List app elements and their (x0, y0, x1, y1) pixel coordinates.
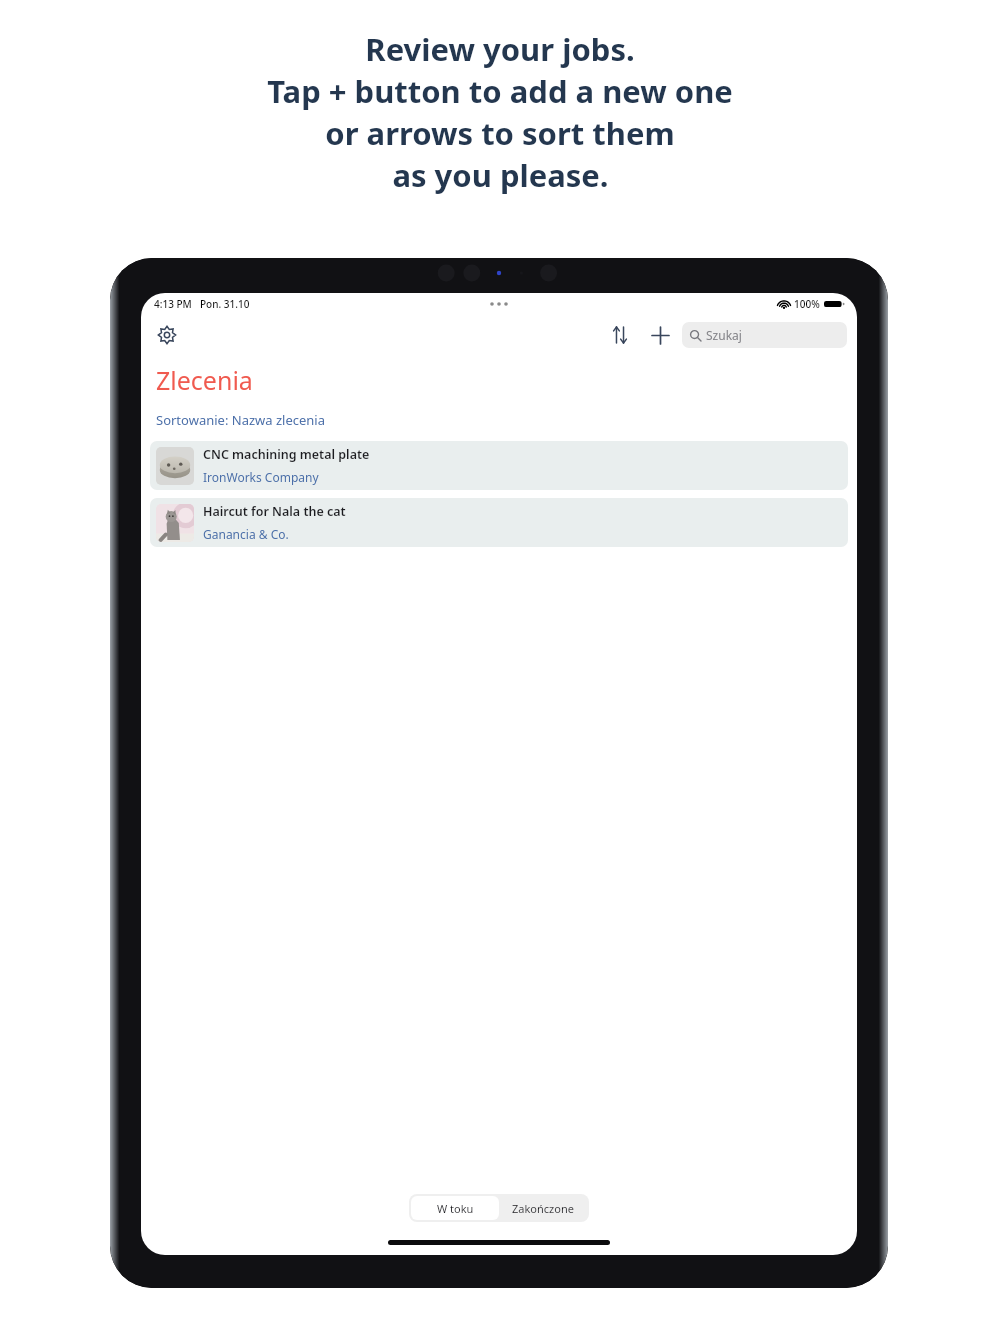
button[interactable]: Add (644, 319, 676, 351)
button[interactable]: Szukaj (682, 322, 847, 348)
staticText: Zakończone (512, 1201, 574, 1216)
staticText: Szukaj (706, 327, 742, 343)
staticText: Review your jobs. (365, 28, 635, 70)
staticText: Zlecenia (156, 363, 253, 397)
staticText: Tap + button to add a new one (267, 70, 733, 112)
button[interactable]: Haircut for Nala the cat (150, 498, 848, 547)
staticText: or arrows to sort them (325, 112, 675, 154)
staticText: IronWorks Company (203, 469, 319, 485)
button[interactable]: Settings (150, 318, 184, 352)
staticText: 4:13 PM (154, 297, 192, 311)
staticText: CNC machining metal plate (203, 446, 370, 463)
staticText: W toku (437, 1201, 474, 1216)
button[interactable]: CNC machining metal plate (150, 441, 848, 490)
staticText: as you please. (392, 154, 609, 196)
staticText: Ganancia & Co. (203, 526, 289, 542)
staticText: Pon. 31.10 (200, 297, 250, 311)
button[interactable]: Zakończone (499, 1196, 587, 1220)
button[interactable]: W toku (411, 1196, 499, 1220)
button[interactable]: Sort (604, 319, 636, 351)
staticText: Haircut for Nala the cat (203, 503, 346, 520)
staticText: Sortowanie: Nazwa zlecenia (156, 411, 325, 429)
staticText: 100% (794, 297, 820, 311)
